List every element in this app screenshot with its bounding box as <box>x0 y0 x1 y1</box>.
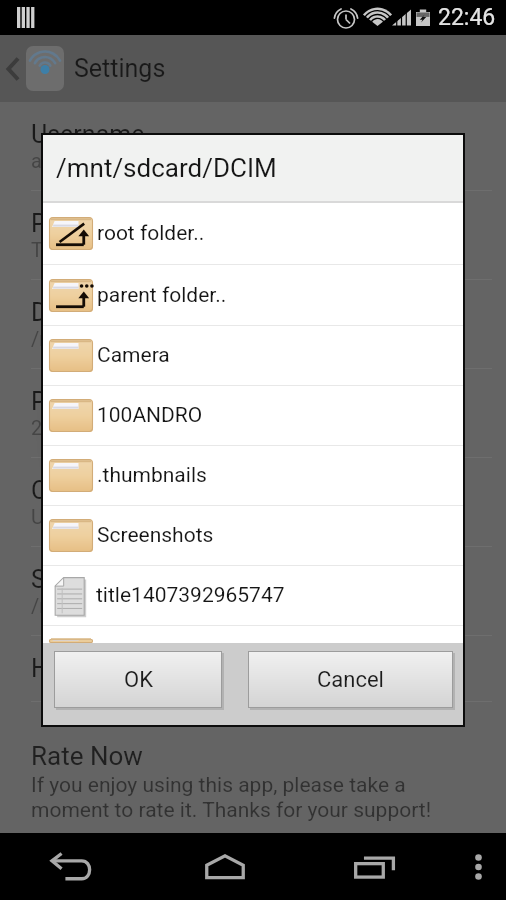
staticText: root folder.. <box>97 221 205 246</box>
staticText: Screenshots <box>97 523 214 548</box>
staticText: If you enjoy using this app, please take… <box>31 773 406 798</box>
staticText: Character encoding <box>31 476 248 505</box>
staticText: Password <box>31 209 142 238</box>
button[interactable] <box>43 626 463 643</box>
staticText: Settings <box>74 54 166 83</box>
staticText: 100ANDRO <box>97 403 203 428</box>
staticText: /mnt/sdcard <box>31 594 144 617</box>
button[interactable]: App icon <box>26 46 64 91</box>
staticText: title1407392965747 <box>96 583 285 608</box>
staticText: Username <box>31 120 145 149</box>
staticText: Camera <box>97 343 170 368</box>
button[interactable]: Password <box>31 209 506 298</box>
button[interactable]: Character encoding <box>31 476 506 565</box>
button[interactable]: Recent apps <box>300 833 450 900</box>
staticText: Default directory <box>31 298 215 327</box>
staticText: Port number <box>31 387 170 416</box>
staticText: OK <box>124 667 153 693</box>
button[interactable]: 100ANDRO <box>43 386 463 445</box>
button[interactable]: title1407392965747 <box>43 566 463 625</box>
staticText: /mnt/sdcard/DCIM <box>56 153 277 183</box>
staticText: Help <box>31 654 83 683</box>
button[interactable]: Camera <box>43 326 463 385</box>
button[interactable]: Cancel <box>249 652 452 707</box>
button[interactable]: Screenshots <box>43 506 463 565</box>
button[interactable]: More options <box>450 833 506 900</box>
button[interactable]: .thumbnails <box>43 446 463 505</box>
staticText: UTF-8 <box>31 505 84 528</box>
button[interactable]: Back <box>0 833 150 900</box>
staticText: 2121 <box>31 416 76 439</box>
button[interactable]: Stay awake while <box>31 565 506 654</box>
staticText: parent folder.. <box>97 283 227 308</box>
button[interactable]: Help <box>31 654 506 720</box>
button[interactable]: Default directory <box>31 298 506 387</box>
staticText: Stay awake while <box>31 565 222 594</box>
staticText: anonymous <box>31 149 136 172</box>
button[interactable]: Rate Now <box>31 741 432 823</box>
staticText: Cancel <box>317 667 384 693</box>
staticText: The password is disabled <box>31 238 258 261</box>
button[interactable]: parent folder.. <box>43 265 463 325</box>
button[interactable]: OK <box>55 652 221 707</box>
button[interactable]: Home <box>150 833 300 900</box>
button[interactable]: root folder.. <box>43 203 463 264</box>
staticText: /mnt/sdcard <box>31 327 144 350</box>
staticText: 22:46 <box>438 4 496 31</box>
staticText: Rate Now <box>31 741 143 771</box>
button[interactable]: Navigate up <box>3 51 23 87</box>
button[interactable]: Username <box>31 120 506 209</box>
staticText: .thumbnails <box>97 463 207 488</box>
staticText: moment to rate it. Thanks for your suppo… <box>31 798 432 823</box>
button[interactable]: Port number <box>31 387 506 476</box>
